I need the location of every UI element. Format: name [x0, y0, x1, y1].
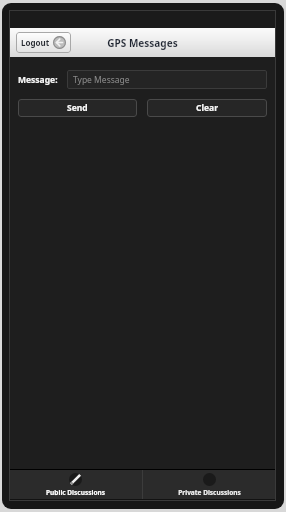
- staticText: Clear: [196, 102, 218, 114]
- staticText: Message:: [18, 74, 58, 86]
- staticText: Public Discussions: [46, 488, 105, 497]
- staticText: Type Message: [73, 74, 130, 86]
- button[interactable]: Private Discussions: [143, 470, 276, 499]
- button[interactable]: Clear: [147, 99, 267, 117]
- button[interactable]: Public Discussions: [9, 470, 142, 499]
- staticText: Send: [67, 102, 88, 114]
- staticText: Logout: [21, 37, 50, 48]
- button[interactable]: Type Message: [67, 70, 267, 89]
- staticText: GPS Messages: [9, 36, 276, 50]
- button[interactable]: Send: [18, 99, 137, 117]
- button[interactable]: Logout: [16, 32, 71, 53]
- staticText: Private Discussions: [178, 488, 241, 497]
